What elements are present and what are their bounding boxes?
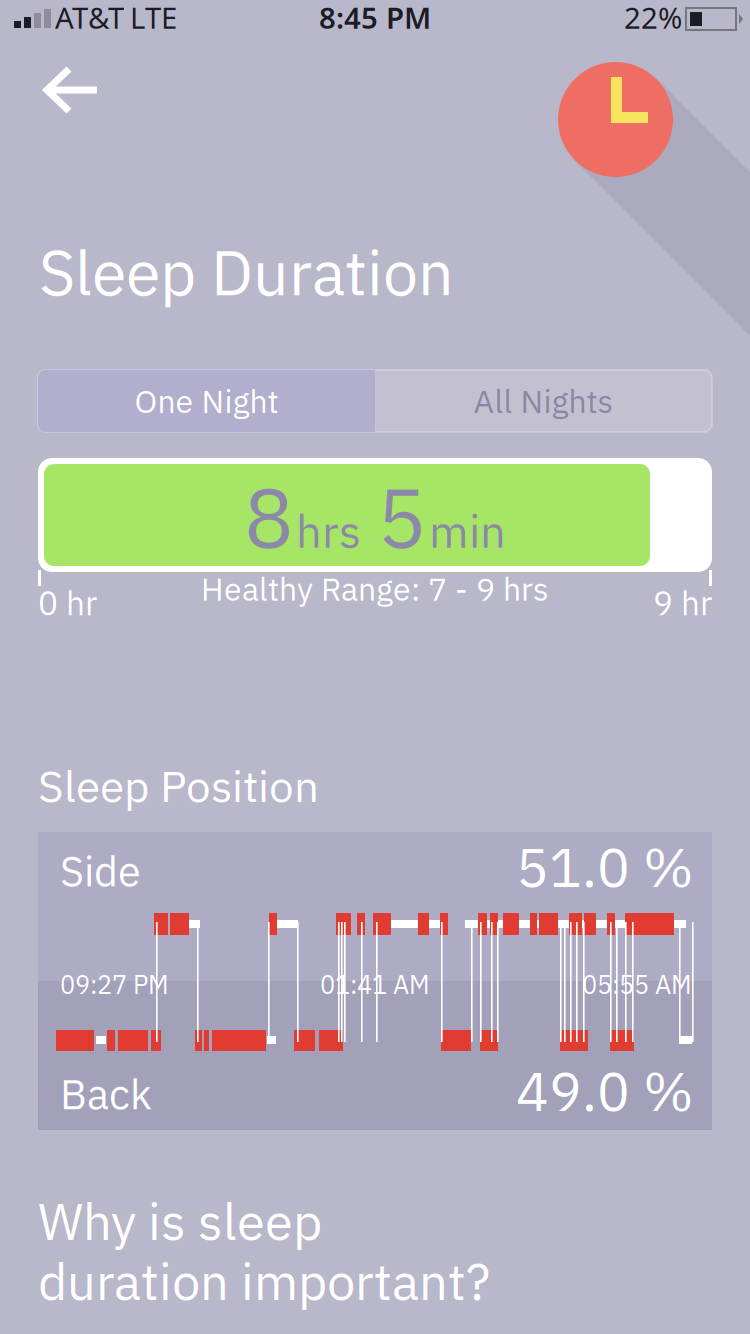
button[interactable]: One Night (38, 370, 375, 432)
staticText: Side (60, 844, 141, 898)
staticText: Sleep Position (38, 757, 319, 814)
staticText: 0 hr (38, 581, 97, 624)
staticText: AT&T (55, 0, 124, 37)
staticText: 05:55 AM (582, 968, 692, 1001)
staticText: 8 (244, 463, 294, 570)
staticText: All Nights (473, 380, 613, 422)
staticText: Back (60, 1067, 152, 1121)
staticText: 09:27 PM (60, 968, 169, 1001)
staticText: Sleep Duration (39, 231, 454, 312)
button[interactable]: Back (44, 67, 100, 113)
button[interactable]: Profile (558, 62, 673, 177)
staticText: 8:45 PM (319, 0, 431, 37)
staticText: hrs (296, 501, 361, 560)
staticText: duration important? (38, 1248, 490, 1314)
staticText: 01:41 AM (320, 968, 430, 1001)
staticText: 22% (624, 0, 682, 37)
staticText: LTE (130, 0, 177, 37)
staticText: Healthy Range: 7 - 9 hrs (201, 568, 549, 610)
button[interactable]: All Nights (375, 370, 712, 432)
staticText: Why is sleep (38, 1188, 322, 1254)
staticText: One Night (134, 380, 278, 422)
staticText: 5 (377, 463, 427, 570)
staticText: 9 hr (653, 581, 712, 624)
staticText: 49.0 % (516, 1055, 694, 1126)
staticText: 51.0 % (516, 831, 694, 902)
staticText: min (429, 501, 506, 560)
